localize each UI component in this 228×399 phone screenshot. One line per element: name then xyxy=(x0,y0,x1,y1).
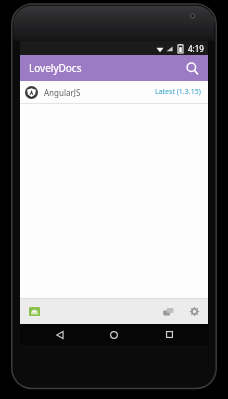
staticText: Latest (1.3.15) xyxy=(155,87,201,97)
button[interactable]: Recent apps xyxy=(154,324,184,345)
button[interactable]: Library xyxy=(158,301,178,321)
button[interactable]: Back xyxy=(45,324,75,345)
staticText: LovelyDocs xyxy=(29,61,82,75)
button[interactable]: Downloads xyxy=(24,301,44,321)
staticText: 4:19 xyxy=(188,43,204,54)
staticText: AngularJS xyxy=(44,87,81,98)
button[interactable]: Search xyxy=(181,57,203,79)
button[interactable]: AngularJS xyxy=(20,81,208,104)
button[interactable]: Settings xyxy=(184,301,204,321)
button[interactable]: Home xyxy=(99,324,129,345)
